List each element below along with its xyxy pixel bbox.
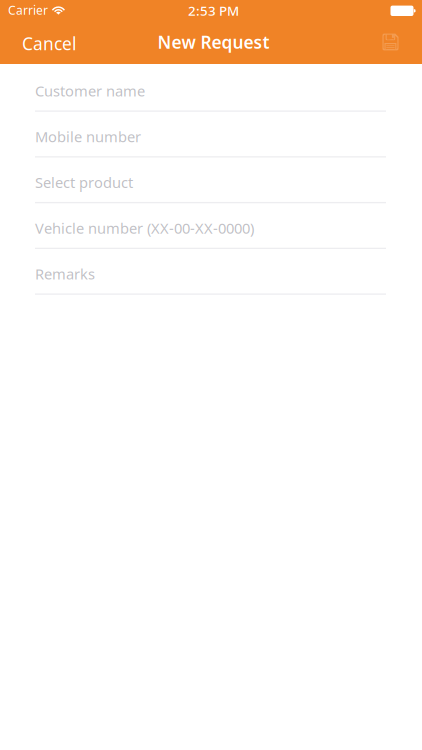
staticText: Carrier bbox=[8, 2, 48, 18]
staticText: Customer name bbox=[35, 81, 145, 100]
staticText: Mobile number bbox=[35, 127, 141, 146]
staticText: 2:53 PM bbox=[188, 2, 239, 19]
staticText: New Request bbox=[157, 30, 269, 53]
button[interactable]: Cancel bbox=[14, 20, 84, 64]
staticText: Select product bbox=[35, 172, 133, 192]
button[interactable]: Save bbox=[372, 20, 409, 64]
staticText: Vehicle number (XX-00-XX-0000) bbox=[35, 218, 254, 238]
staticText: Cancel bbox=[22, 32, 76, 55]
staticText: Remarks bbox=[35, 264, 95, 283]
